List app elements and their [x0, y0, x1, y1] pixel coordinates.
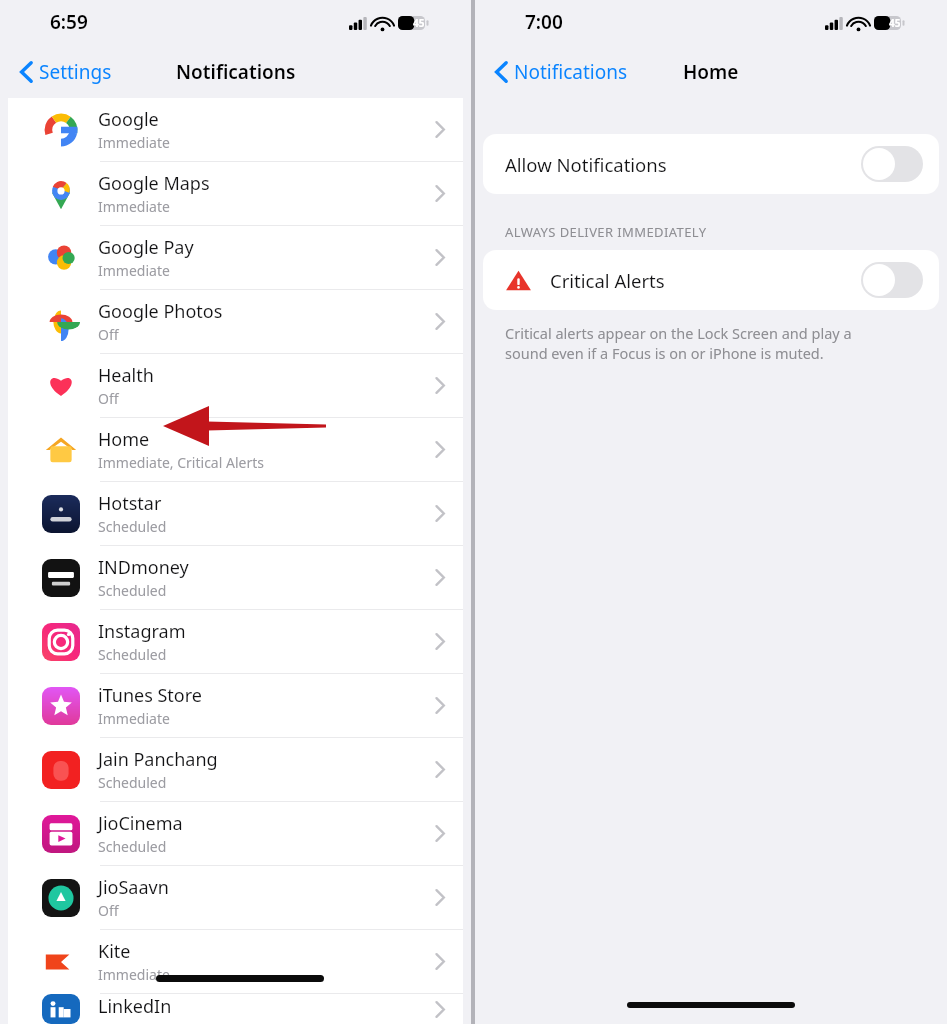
button[interactable]: Allow Notifications	[483, 134, 939, 194]
staticText: Notifications	[176, 59, 296, 85]
staticText: Scheduled	[98, 773, 167, 792]
staticText: Off	[98, 325, 119, 344]
staticText: Health	[98, 363, 154, 388]
staticText: Notifications	[514, 59, 628, 85]
staticText: Home	[683, 59, 739, 85]
staticText: Critical alerts appear on the Lock Scree…	[505, 323, 852, 364]
staticText: Immediate	[98, 197, 170, 216]
button[interactable]: JioSaavn	[8, 865, 463, 929]
button[interactable]: Google Photos	[8, 289, 463, 353]
staticText: ALWAYS DELIVER IMMEDIATELY	[505, 223, 707, 241]
staticText: Allow Notifications	[505, 152, 861, 177]
button[interactable]: Google Pay	[8, 225, 463, 289]
staticText: Scheduled	[98, 517, 167, 536]
staticText: Jain Panchang	[98, 747, 218, 772]
staticText: 6:59	[50, 9, 88, 35]
staticText: LinkedIn	[98, 994, 172, 1019]
button[interactable]: Notifications	[483, 53, 638, 91]
staticText: iTunes Store	[98, 683, 202, 708]
staticText: INDmoney	[98, 555, 189, 580]
button[interactable]: Critical Alerts	[483, 250, 939, 310]
staticText: Settings	[39, 59, 112, 85]
staticText: Off	[98, 901, 119, 920]
button[interactable]: iTunes Store	[8, 673, 463, 737]
staticText: Critical Alerts	[550, 268, 861, 293]
staticText: Google Pay	[98, 235, 194, 260]
button[interactable]: JioCinema	[8, 801, 463, 865]
staticText: Off	[98, 389, 119, 408]
staticText: Scheduled	[98, 645, 167, 664]
staticText: Google Maps	[98, 171, 210, 196]
staticText: Hotstar	[98, 491, 162, 516]
staticText: 45	[413, 16, 425, 30]
staticText: Immediate	[98, 965, 170, 984]
staticText: 45	[889, 16, 901, 30]
staticText: Scheduled	[98, 837, 167, 856]
button[interactable]: Health	[8, 353, 463, 417]
button[interactable]: Jain Panchang	[8, 737, 463, 801]
button[interactable]: Settings	[8, 53, 122, 91]
staticText: Kite	[98, 939, 131, 964]
staticText: Immediate	[98, 133, 170, 152]
staticText: Immediate	[98, 261, 170, 280]
staticText: Home	[98, 427, 150, 452]
staticText: Instagram	[98, 619, 186, 644]
button[interactable]: Google	[8, 98, 463, 161]
button[interactable]: Hotstar	[8, 481, 463, 545]
staticText: Google Photos	[98, 299, 223, 324]
staticText: Immediate, Critical Alerts	[98, 453, 264, 472]
staticText: Scheduled	[98, 581, 167, 600]
staticText: 7:00	[525, 9, 563, 35]
button[interactable]: LinkedIn	[8, 993, 463, 1024]
button[interactable]: Instagram	[8, 609, 463, 673]
staticText: Google	[98, 107, 159, 132]
button[interactable]: Kite	[8, 929, 463, 993]
button[interactable]: Home	[8, 417, 463, 481]
button[interactable]: INDmoney	[8, 545, 463, 609]
staticText: JioCinema	[98, 811, 183, 836]
staticText: JioSaavn	[98, 875, 169, 900]
button[interactable]: Google Maps	[8, 161, 463, 225]
staticText: Immediate	[98, 709, 170, 728]
